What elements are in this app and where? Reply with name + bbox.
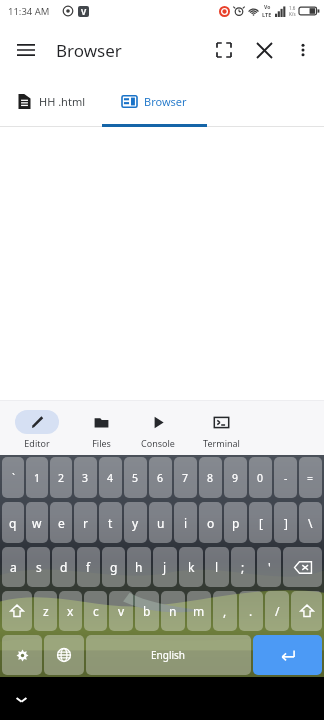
button[interactable]: Fullscreen	[204, 30, 244, 70]
staticText: \	[308, 515, 313, 531]
button[interactable]: n	[161, 591, 185, 631]
staticText: m	[193, 603, 205, 619]
button[interactable]: o	[199, 502, 222, 543]
button[interactable]: 3	[74, 457, 97, 498]
button[interactable]: q	[2, 502, 24, 543]
button[interactable]: u	[149, 502, 172, 543]
button[interactable]: r	[74, 502, 97, 543]
staticText: Vo	[264, 4, 271, 11]
button[interactable]: z	[34, 591, 57, 631]
staticText: English	[151, 648, 186, 662]
button[interactable]: Console	[128, 407, 188, 449]
staticText: z	[43, 603, 49, 619]
button[interactable]: f	[77, 547, 100, 587]
button[interactable]: .	[239, 591, 263, 631]
staticText: v	[118, 603, 125, 619]
staticText: 5	[132, 471, 139, 485]
button[interactable]: Files	[74, 407, 128, 449]
button[interactable]: \	[299, 502, 322, 543]
staticText: s	[36, 559, 42, 575]
button[interactable]: Hide keyboard	[6, 684, 36, 714]
button[interactable]: v	[109, 591, 133, 631]
button[interactable]: 2	[50, 457, 72, 498]
button[interactable]: w	[26, 502, 48, 543]
staticText: Editor	[24, 437, 50, 449]
staticText: c	[93, 603, 99, 619]
button[interactable]: x	[59, 591, 82, 631]
staticText: 2	[58, 471, 65, 485]
button[interactable]: [	[249, 502, 272, 543]
button[interactable]: m	[187, 591, 211, 631]
staticText: 8	[207, 471, 214, 485]
button[interactable]: Backspace	[283, 547, 322, 587]
button[interactable]: Shift	[2, 591, 32, 631]
staticText: 4	[107, 471, 114, 485]
button[interactable]: 5	[124, 457, 147, 498]
button[interactable]: 1	[26, 457, 48, 498]
staticText: V	[81, 6, 87, 17]
button[interactable]: Open navigation drawer	[6, 30, 46, 70]
button[interactable]: ,	[213, 591, 237, 631]
button[interactable]: 7	[174, 457, 197, 498]
staticText: Files	[92, 437, 111, 449]
button[interactable]: =	[299, 457, 322, 498]
button[interactable]: /	[265, 591, 289, 631]
button[interactable]: Editor	[0, 407, 74, 449]
button[interactable]: p	[224, 502, 247, 543]
staticText: .	[249, 603, 253, 619]
button[interactable]: Browser	[102, 78, 207, 124]
staticText: [	[259, 515, 263, 531]
staticText: K/s	[289, 11, 296, 17]
button[interactable]: English	[86, 635, 251, 675]
button[interactable]: b	[135, 591, 159, 631]
button[interactable]: -	[274, 457, 297, 498]
button[interactable]: 0	[249, 457, 272, 498]
button[interactable]: '	[257, 547, 281, 587]
button[interactable]: y	[124, 502, 147, 543]
button[interactable]: Shift	[291, 591, 322, 631]
button[interactable]: d	[52, 547, 75, 587]
button[interactable]: 9	[224, 457, 247, 498]
button[interactable]: Settings	[2, 635, 42, 675]
button[interactable]: 8	[199, 457, 222, 498]
button[interactable]: h	[127, 547, 151, 587]
button[interactable]: g	[102, 547, 125, 587]
button[interactable]: More options	[284, 30, 322, 70]
staticText: Console	[141, 437, 175, 449]
button[interactable]: `	[2, 457, 24, 498]
staticText: -	[284, 471, 288, 485]
button[interactable]: 4	[99, 457, 122, 498]
button[interactable]: ]	[274, 502, 297, 543]
button[interactable]: Change language	[44, 635, 84, 675]
button[interactable]: Terminal	[188, 407, 254, 449]
staticText: d	[60, 559, 68, 575]
button[interactable]: s	[27, 547, 50, 587]
staticText: u	[157, 515, 165, 531]
button[interactable]: 6	[149, 457, 172, 498]
button[interactable]: Enter	[253, 635, 322, 675]
staticText: ]	[284, 515, 288, 531]
button[interactable]: e	[50, 502, 72, 543]
staticText: o	[207, 515, 215, 531]
button[interactable]: i	[174, 502, 197, 543]
button[interactable]: c	[84, 591, 107, 631]
staticText: b	[143, 603, 151, 619]
staticText: ;	[241, 559, 245, 575]
staticText: /	[275, 603, 280, 619]
staticText: `	[12, 471, 15, 485]
button[interactable]: l	[205, 547, 229, 587]
staticText: 1	[34, 471, 41, 485]
staticText: l	[215, 559, 219, 575]
button[interactable]: t	[99, 502, 122, 543]
button[interactable]: Close	[244, 30, 284, 70]
staticText: i	[184, 515, 188, 531]
button[interactable]: j	[153, 547, 177, 587]
staticText: t	[108, 515, 113, 531]
button[interactable]: a	[2, 547, 25, 587]
button[interactable]: HH .html	[0, 78, 102, 124]
button[interactable]: k	[179, 547, 203, 587]
staticText: 3	[82, 471, 89, 485]
staticText: 11:34 AM	[8, 5, 50, 18]
button[interactable]: ;	[231, 547, 255, 587]
staticText: x	[67, 603, 74, 619]
